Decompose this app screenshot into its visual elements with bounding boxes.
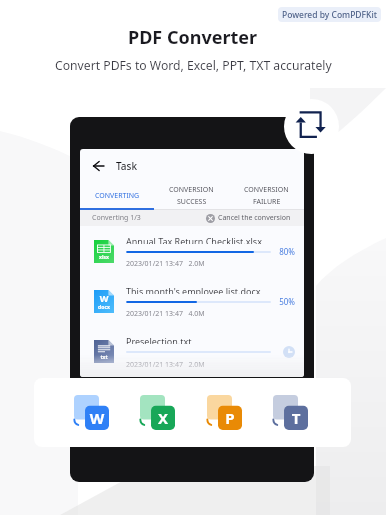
staticText: X xyxy=(151,408,175,428)
staticText: T xyxy=(284,408,308,428)
staticText: Convert PDFs to Word, Excel, PPT, TXT ac… xyxy=(55,57,332,74)
button[interactable]: CONVERSION xyxy=(229,183,304,210)
staticText: 80% xyxy=(274,246,295,257)
button[interactable]: CONVERSION xyxy=(154,183,229,210)
button[interactable]: Convert xyxy=(284,99,339,154)
staticText: P xyxy=(218,408,242,428)
staticText: CONVERSION xyxy=(244,185,289,195)
staticText: Annual Tax Return Checklist.xlsx xyxy=(126,235,262,244)
staticText: Cancel the conversion xyxy=(218,213,291,223)
button[interactable]: W xyxy=(80,276,304,326)
staticText: 50% xyxy=(274,296,295,307)
staticText: SUCCESS xyxy=(177,197,207,207)
button[interactable]: Excel xyxy=(140,395,175,430)
staticText: Converting 1/3 xyxy=(92,213,141,223)
staticText: PDF Converter xyxy=(128,25,258,50)
staticText: 2023/01/21 13:47 4.0M xyxy=(126,309,205,319)
staticText: W xyxy=(94,292,114,304)
staticText: FAILURE xyxy=(253,197,281,207)
staticText: CONVERTING xyxy=(95,191,140,201)
button[interactable]: CONVERTING xyxy=(80,183,154,210)
staticText: Powered by ComPDFKit xyxy=(282,9,377,21)
staticText: W xyxy=(85,408,109,428)
staticText: 2023/01/21 13:47 2.0M xyxy=(126,360,205,370)
staticText: docx xyxy=(94,304,114,311)
button[interactable]: PowerPoint xyxy=(207,395,242,430)
button[interactable]: Back xyxy=(93,161,104,171)
staticText: 2023/01/21 13:47 2.0M xyxy=(126,259,205,269)
button[interactable]: xlsx xyxy=(80,226,304,276)
staticText: This month's employee list.docx xyxy=(126,285,261,294)
staticText: CONVERSION xyxy=(169,185,214,195)
button[interactable]: Text xyxy=(273,395,308,430)
button[interactable]: Word xyxy=(74,395,109,430)
staticText: xlsx xyxy=(94,254,114,261)
button[interactable]: Powered by ComPDFKit xyxy=(278,7,381,22)
staticText: txt xyxy=(94,354,114,361)
staticText: Preselection.txt xyxy=(126,335,192,344)
button[interactable]: txt xyxy=(80,326,304,376)
staticText: Task xyxy=(116,159,137,173)
button[interactable]: Cancel the conversion xyxy=(206,213,291,223)
